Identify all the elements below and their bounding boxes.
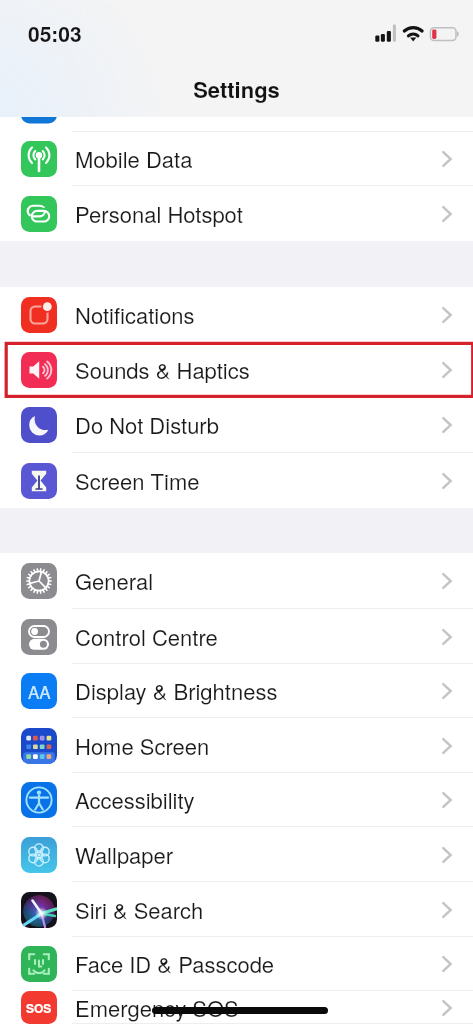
staticText: AA	[28, 679, 51, 703]
staticText: Do Not Disturb	[75, 409, 219, 441]
staticText: General	[75, 565, 154, 597]
staticText: SOS	[26, 999, 52, 1016]
button[interactable]: Face ID & Passcode	[0, 937, 473, 991]
staticText: Mobile Data	[75, 143, 193, 175]
staticText: Sounds & Haptics	[75, 354, 250, 386]
staticText: Face ID & Passcode	[75, 948, 275, 980]
staticText: Control Centre	[75, 621, 218, 653]
button[interactable]: Accessibility	[0, 773, 473, 827]
staticText: Emergency SOS	[75, 992, 239, 1024]
button[interactable]	[0, 117, 473, 132]
button[interactable]: Control Centre	[0, 609, 473, 664]
button[interactable]: General	[0, 553, 473, 609]
staticText: Personal Hotspot	[75, 198, 243, 230]
staticText: Notifications	[75, 299, 195, 331]
button[interactable]: SOS	[0, 991, 473, 1024]
staticText: Display & Brightness	[75, 675, 278, 707]
button[interactable]: Screen Time	[0, 453, 473, 508]
button[interactable]: Wallpaper	[0, 827, 473, 882]
button[interactable]: Do Not Disturb	[0, 397, 473, 453]
staticText: Accessibility	[75, 784, 195, 816]
staticText: 05:03	[28, 18, 82, 48]
button[interactable]: Notifications	[0, 287, 473, 343]
staticText: Siri & Search	[75, 894, 204, 926]
button[interactable]: Personal Hotspot	[0, 186, 473, 241]
button[interactable]: Sounds & Haptics	[0, 343, 473, 397]
staticText: Settings	[193, 73, 280, 105]
button[interactable]: AA	[0, 664, 473, 718]
staticText: Screen Time	[75, 465, 200, 497]
button[interactable]: Mobile Data	[0, 132, 473, 186]
button[interactable]: Home Screen	[0, 718, 473, 773]
staticText: Wallpaper	[75, 839, 174, 871]
button[interactable]: Siri & Search	[0, 882, 473, 937]
staticText: Home Screen	[75, 730, 210, 762]
